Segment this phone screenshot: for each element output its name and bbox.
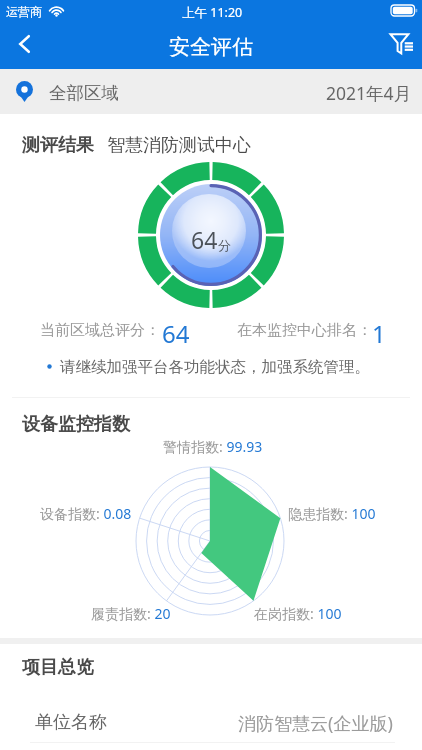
staticText: 测评结果 <box>22 134 94 157</box>
button[interactable]: Back <box>0 22 48 69</box>
staticText: 项目总览 <box>22 656 94 679</box>
staticText: 设备指数: 0.08 <box>40 504 132 523</box>
button[interactable]: 全部区域 <box>0 69 422 114</box>
staticText: 在本监控中心排名： <box>237 321 372 340</box>
staticText: 设备监控指数 <box>22 413 130 436</box>
staticText: 单位名称 <box>35 711 107 734</box>
staticText: 安全评估 <box>169 34 253 60</box>
staticText: 履责指数: 20 <box>91 604 171 623</box>
staticText: 分 <box>218 237 231 253</box>
staticText: 隐患指数: 100 <box>288 504 376 523</box>
staticText: 在岗指数: 100 <box>254 604 342 623</box>
staticText: 1 <box>372 317 386 350</box>
staticText: 64 <box>162 317 190 350</box>
staticText: 当前区域总评分： <box>40 321 160 340</box>
button[interactable]: 单位名称 <box>35 711 393 736</box>
staticText: 上午 11:20 <box>182 4 243 21</box>
staticText: 智慧消防测试中心 <box>107 134 251 157</box>
staticText: 2021年4月 <box>326 81 412 105</box>
staticText: 消防智慧云(企业版) <box>238 711 393 736</box>
staticText: 运营商 <box>6 4 42 19</box>
staticText: 请继续加强平台各功能状态，加强系统管理。 <box>60 357 370 377</box>
staticText: 警情指数: 99.93 <box>163 437 263 456</box>
button[interactable]: Filter <box>374 22 422 69</box>
staticText: 全部区域 <box>49 82 119 104</box>
staticText: 64 <box>191 224 218 255</box>
